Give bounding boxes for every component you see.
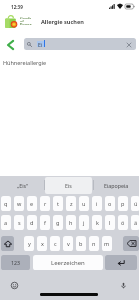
button[interactable]: k: [92, 215, 102, 230]
staticText: g: [56, 219, 60, 226]
staticText: s: [18, 219, 21, 226]
button[interactable]: [1, 236, 14, 251]
staticText: b: [79, 240, 83, 247]
button[interactable]: Dictation: [119, 281, 127, 289]
staticText: n: [92, 240, 96, 247]
button[interactable]: l: [105, 215, 115, 230]
staticText: Hühnereiallergie: [3, 59, 47, 66]
staticText: x: [41, 240, 44, 247]
button[interactable]: „Eis“: [0, 177, 45, 194]
button[interactable]: u: [79, 196, 89, 211]
staticText: o: [108, 200, 112, 207]
staticText: Power: [20, 22, 32, 25]
button[interactable]: n: [89, 236, 99, 251]
button[interactable]: Clear text: [124, 40, 133, 49]
button[interactable]: c: [50, 236, 60, 251]
staticText: Allergie suchen: [41, 18, 84, 26]
staticText: e: [30, 200, 34, 207]
staticText: r: [44, 200, 47, 207]
staticText: a: [4, 219, 8, 226]
staticText: l: [109, 219, 111, 226]
staticText: p: [121, 200, 125, 207]
button[interactable]: Back: [2, 38, 16, 51]
button[interactable]: q: [1, 196, 11, 211]
staticText: ö: [121, 219, 125, 226]
button[interactable]: Emoji keyboard: [10, 281, 18, 289]
staticText: of: [20, 19, 24, 22]
staticText: „Eis“: [17, 182, 28, 189]
staticText: v: [67, 240, 70, 247]
button[interactable]: d: [27, 215, 37, 230]
staticText: y: [28, 240, 31, 247]
staticText: k: [96, 219, 99, 226]
button[interactable]: v: [63, 236, 73, 251]
staticText: ü: [134, 200, 138, 207]
staticText: t: [57, 200, 59, 207]
staticText: Ei: [38, 41, 43, 47]
button[interactable]: Leerzeichen: [33, 255, 103, 270]
button[interactable]: Eiapopeia: [93, 177, 139, 194]
button[interactable]: m: [102, 236, 112, 251]
button[interactable]: x: [37, 236, 47, 251]
staticText: i: [96, 200, 98, 207]
button[interactable]: e: [27, 196, 37, 211]
button[interactable]: a: [1, 215, 11, 230]
button[interactable]: [105, 255, 137, 270]
button[interactable]: y: [24, 236, 34, 251]
button[interactable]: ü: [131, 196, 139, 211]
button[interactable]: ö: [118, 215, 128, 230]
button[interactable]: i: [92, 196, 102, 211]
button[interactable]: Eis: [45, 177, 92, 194]
button[interactable]: 123: [1, 255, 30, 270]
staticText: Goods: [20, 16, 32, 19]
staticText: h: [69, 219, 73, 226]
button[interactable]: f: [40, 215, 50, 230]
staticText: 123: [11, 259, 20, 266]
staticText: Leerzeichen: [51, 259, 85, 267]
button[interactable]: p: [118, 196, 128, 211]
staticText: c: [54, 240, 57, 247]
button[interactable]: t: [53, 196, 63, 211]
staticText: q: [4, 200, 8, 207]
button[interactable]: z: [66, 196, 76, 211]
staticText: u: [82, 200, 86, 207]
button[interactable]: h: [66, 215, 76, 230]
staticText: 12:39: [11, 4, 23, 10]
button[interactable]: b: [76, 236, 86, 251]
staticText: z: [70, 200, 73, 207]
button[interactable]: Ei: [24, 38, 136, 50]
button[interactable]: s: [14, 215, 24, 230]
button[interactable]: ä: [131, 215, 139, 230]
button[interactable]: r: [40, 196, 50, 211]
staticText: Eis: [65, 182, 72, 189]
staticText: Eiapopeia: [104, 182, 129, 189]
staticText: m: [104, 240, 110, 247]
button[interactable]: g: [53, 215, 63, 230]
staticText: j: [83, 219, 85, 226]
button[interactable]: o: [105, 196, 115, 211]
staticText: ä: [134, 219, 138, 226]
button[interactable]: Hühnereiallergie: [0, 54, 139, 69]
button[interactable]: j: [79, 215, 89, 230]
staticText: f: [44, 219, 46, 226]
staticText: w: [17, 200, 22, 207]
button[interactable]: [123, 236, 139, 251]
staticText: d: [30, 219, 34, 226]
button[interactable]: w: [14, 196, 24, 211]
